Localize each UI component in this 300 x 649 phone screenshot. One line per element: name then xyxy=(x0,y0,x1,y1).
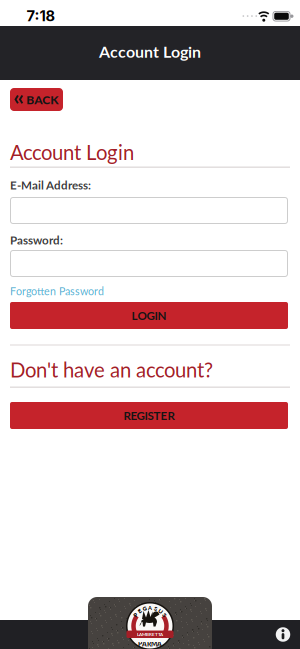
staticText: P xyxy=(134,612,138,618)
staticText: Account Login xyxy=(10,140,134,164)
staticText: U xyxy=(158,608,162,614)
staticText: E xyxy=(138,608,141,614)
button[interactable]: Forgotten Password xyxy=(10,285,210,297)
staticText: Account Login xyxy=(99,42,201,61)
staticText: G xyxy=(142,605,146,612)
staticText: S xyxy=(163,612,166,618)
staticText: 7:18 xyxy=(26,7,55,25)
button[interactable]: BACK xyxy=(10,88,63,111)
staticText: Don't have an account? xyxy=(10,357,213,382)
staticText: A xyxy=(148,604,152,611)
staticText: E-Mail Address: xyxy=(10,178,91,192)
staticText: BACK xyxy=(26,92,58,107)
button[interactable]: LOGIN xyxy=(10,302,288,329)
button[interactable] xyxy=(275,627,290,642)
staticText: REGISTER xyxy=(123,408,174,422)
staticText: LAMBRETTA xyxy=(137,631,163,637)
staticText: PARMA xyxy=(138,640,162,648)
staticText: S xyxy=(154,605,157,612)
staticText: Forgotten Password xyxy=(10,285,104,297)
staticText: LOGIN xyxy=(131,308,166,322)
button[interactable]: REGISTER xyxy=(10,402,288,429)
staticText: Password: xyxy=(10,233,63,247)
